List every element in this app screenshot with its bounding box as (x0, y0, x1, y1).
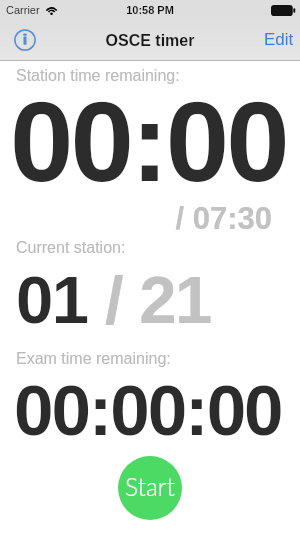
button[interactable]: Edit (264, 30, 294, 49)
staticText: 10:58 PM (0, 4, 300, 16)
staticText: 00:00 (10, 78, 287, 205)
staticText: Exam time remaining: (16, 350, 171, 368)
staticText: Carrier (6, 4, 40, 16)
button[interactable]: Info (10, 25, 40, 55)
staticText: Current station: (16, 239, 126, 257)
staticText: Edit (264, 30, 294, 49)
staticText: Station time remaining: (16, 67, 180, 85)
staticText: / 21 (88, 262, 211, 337)
staticText: Start (125, 472, 175, 501)
button[interactable]: Start (118, 456, 182, 520)
staticText: 01 (16, 262, 88, 337)
staticText: / 07:30 (0, 201, 272, 236)
staticText: OSCE timer (0, 32, 300, 50)
staticText: 00:00:00 (14, 371, 282, 450)
